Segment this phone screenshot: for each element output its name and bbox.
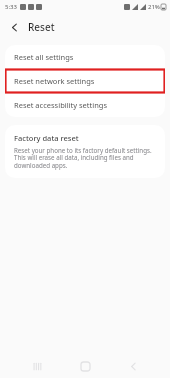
- button[interactable]: Home: [74, 355, 96, 377]
- staticText: Reset network settings: [14, 76, 95, 86]
- staticText: Reset your phone to its factory default …: [14, 146, 156, 170]
- button[interactable]: Back: [5, 18, 23, 36]
- button[interactable]: Reset network settings: [5, 69, 165, 93]
- staticText: Factory data reset: [14, 133, 79, 143]
- staticText: Reset all settings: [14, 52, 74, 62]
- button[interactable]: Reset accessibility settings: [5, 93, 165, 117]
- staticText: Reset accessibility settings: [14, 100, 108, 110]
- staticText: Reset: [28, 20, 55, 34]
- button[interactable]: Factory data reset: [5, 125, 165, 178]
- button[interactable]: Back: [122, 355, 144, 377]
- button[interactable]: Reset all settings: [5, 45, 165, 69]
- staticText: 5:33: [5, 3, 17, 11]
- button[interactable]: Recents: [26, 355, 48, 377]
- staticText: 21%: [148, 3, 160, 11]
